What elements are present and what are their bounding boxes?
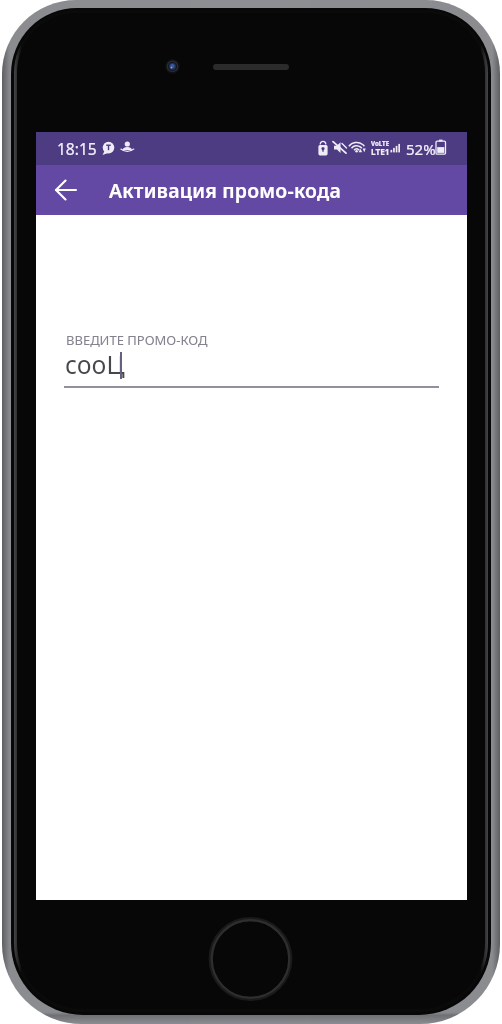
staticText: VoLTE [371, 139, 390, 147]
staticText: cooЦ [65, 348, 125, 381]
button[interactable]: Введите промо-код [64, 325, 439, 389]
button[interactable]: Back [45, 169, 87, 211]
staticText: LTE1 [371, 146, 390, 157]
staticText: 18:15 [57, 138, 97, 159]
staticText: ВВЕДИТЕ ПРОМО-КОД [66, 331, 208, 349]
staticText: 52% [406, 139, 436, 159]
staticText: Активация промо-кода [109, 177, 341, 204]
